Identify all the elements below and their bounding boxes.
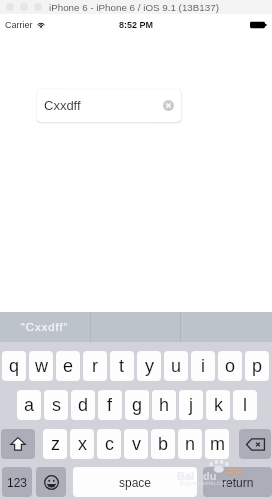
button[interactable]: space <box>73 467 197 497</box>
button[interactable]: i <box>191 351 215 381</box>
staticText: a <box>24 395 35 415</box>
button[interactable]: a <box>17 390 41 420</box>
staticText: b <box>158 434 169 454</box>
button[interactable]: “Cxxdff” <box>0 312 90 342</box>
button[interactable]: Cxxdff <box>37 89 181 122</box>
button[interactable]: j <box>179 390 203 420</box>
button[interactable]: g <box>125 390 149 420</box>
button[interactable]: u <box>164 351 188 381</box>
staticText: space <box>119 476 152 489</box>
button[interactable]: b <box>151 429 175 459</box>
staticText: s <box>52 395 61 415</box>
button[interactable]: r <box>83 351 107 381</box>
button[interactable]: s <box>44 390 68 420</box>
button[interactable]: c <box>97 429 121 459</box>
button[interactable]: t <box>110 351 134 381</box>
staticText: “Cxxdff” <box>21 321 69 334</box>
staticText: Bai <box>177 470 195 482</box>
staticText: i <box>201 356 205 376</box>
staticText: k <box>214 395 223 415</box>
staticText: g <box>132 395 143 415</box>
button[interactable]: Emoji keyboard <box>36 467 66 497</box>
button[interactable]: q <box>2 351 26 381</box>
button[interactable]: Backspace <box>239 429 271 459</box>
staticText: Cxxdff <box>44 98 81 113</box>
button[interactable]: p <box>245 351 269 381</box>
button[interactable]: l <box>233 390 257 420</box>
staticText: 8:52 PM <box>119 20 154 30</box>
staticText: c <box>105 434 114 454</box>
staticText: v <box>132 434 141 454</box>
staticText: f <box>107 395 113 415</box>
button[interactable]: return <box>203 467 272 497</box>
button[interactable]: Window button <box>6 3 14 11</box>
button[interactable]: Window button <box>34 3 42 11</box>
button[interactable]: h <box>152 390 176 420</box>
button[interactable]: m <box>205 429 229 459</box>
staticText: p <box>252 356 263 376</box>
staticText: y <box>145 356 154 376</box>
button[interactable]: y <box>137 351 161 381</box>
staticText: return <box>222 476 254 489</box>
button[interactable]: 123 <box>2 467 32 497</box>
staticText: j <box>189 395 193 415</box>
button[interactable]: f <box>98 390 122 420</box>
staticText: iPhone 6 - iPhone 6 / iOS 9.1 (13B137) <box>49 2 219 13</box>
button[interactable]: e <box>56 351 80 381</box>
staticText: z <box>51 434 60 454</box>
staticText: 123 <box>7 476 28 489</box>
staticText: w <box>35 356 48 376</box>
button[interactable]: n <box>178 429 202 459</box>
staticText: t <box>119 356 125 376</box>
staticText: r <box>92 356 98 376</box>
staticText: h <box>159 395 170 415</box>
button[interactable]: x <box>70 429 94 459</box>
button[interactable]: Clear text <box>163 100 174 111</box>
button[interactable]: Window button <box>20 3 28 11</box>
staticText: l <box>243 395 247 415</box>
staticText: o <box>225 356 236 376</box>
staticText: d <box>78 395 89 415</box>
button[interactable]: w <box>29 351 53 381</box>
staticText: n <box>185 434 196 454</box>
staticText: x <box>78 434 87 454</box>
staticText: du <box>203 470 217 482</box>
staticText: jingyan.baidu.com <box>180 480 229 487</box>
staticText: q <box>9 356 20 376</box>
staticText: m <box>210 434 225 454</box>
button[interactable]: d <box>71 390 95 420</box>
button[interactable]: o <box>218 351 242 381</box>
staticText: u <box>171 356 182 376</box>
staticText: Carrier <box>5 20 33 30</box>
button[interactable]: Shift <box>1 429 35 459</box>
button[interactable]: z <box>43 429 67 459</box>
staticText: e <box>63 356 74 376</box>
button[interactable]: v <box>124 429 148 459</box>
button[interactable]: k <box>206 390 230 420</box>
